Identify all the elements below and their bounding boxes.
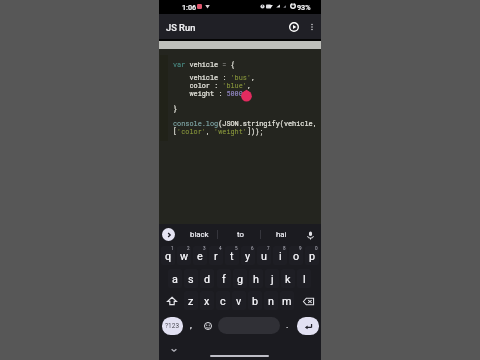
button[interactable]: c (216, 291, 230, 310)
button[interactable]: a (168, 269, 182, 288)
staticText: l (303, 273, 306, 286)
staticText: t (230, 250, 234, 263)
staticText: color : 'blue', (173, 81, 252, 90)
button[interactable]: Run (283, 16, 305, 38)
staticText: 3 (203, 246, 206, 251)
button[interactable]: ?123 (162, 317, 183, 335)
staticText: e (197, 250, 203, 263)
button[interactable]: Emoji (201, 317, 214, 335)
button[interactable]: Space (218, 317, 280, 334)
staticText: var vehicle = { (173, 60, 235, 69)
button[interactable]: 9 (289, 246, 303, 265)
staticText: ?123 (165, 322, 180, 330)
button[interactable]: f (217, 269, 231, 288)
staticText: v (236, 295, 242, 308)
staticText: 4 (219, 246, 222, 251)
staticText: n (268, 295, 274, 308)
staticText: y (245, 250, 251, 263)
button[interactable]: g (233, 269, 247, 288)
staticText: r (214, 250, 218, 263)
button[interactable]: , (185, 317, 197, 335)
button[interactable]: to (220, 224, 260, 245)
button[interactable]: . (282, 317, 293, 335)
button[interactable]: d (200, 269, 214, 288)
staticText: k (285, 273, 291, 286)
staticText: m (282, 295, 292, 308)
button[interactable]: More options (302, 17, 322, 37)
button[interactable]: 1 (161, 246, 175, 265)
staticText: 0 (315, 246, 318, 251)
staticText: o (293, 250, 300, 263)
staticText: c (220, 295, 226, 308)
button[interactable]: s (184, 269, 198, 288)
button[interactable]: 3 (193, 246, 207, 265)
staticText: 7 (267, 246, 270, 251)
staticText: s (188, 273, 194, 286)
button[interactable]: b (248, 291, 262, 310)
staticText: i (279, 250, 282, 263)
button[interactable]: Expand toolbar (162, 228, 175, 241)
button[interactable]: 4 (209, 246, 223, 265)
staticText: b (252, 295, 259, 308)
staticText: , (190, 320, 192, 331)
button[interactable]: j (265, 269, 279, 288)
staticText: weight : 5000 (173, 89, 243, 98)
staticText: a (172, 273, 178, 286)
staticText: d (204, 273, 211, 286)
staticText: ['color', 'weight'])); (173, 127, 264, 136)
staticText: hai (276, 230, 287, 239)
staticText: f (222, 273, 226, 286)
button[interactable]: 6 (241, 246, 255, 265)
button[interactable]: Voice input (303, 228, 317, 242)
staticText: vehicle : 'bus', (173, 73, 256, 82)
button[interactable]: 0 (305, 246, 319, 265)
staticText: q (165, 250, 172, 263)
button[interactable]: v (232, 291, 246, 310)
button[interactable]: Shift (163, 292, 181, 310)
staticText: 1:06 (182, 3, 197, 11)
button[interactable]: 5 (225, 246, 239, 265)
staticText: u (261, 250, 267, 263)
button[interactable]: 8 (273, 246, 287, 265)
button[interactable]: Hide keyboard (167, 343, 181, 357)
staticText: . (286, 320, 289, 331)
staticText: j (271, 273, 274, 286)
button[interactable]: JS Run (166, 22, 196, 33)
button[interactable]: k (281, 269, 295, 288)
button[interactable]: l (297, 269, 311, 288)
staticText: p (309, 250, 316, 263)
button[interactable]: h (249, 269, 263, 288)
button[interactable]: x (200, 291, 214, 310)
button[interactable]: 2 (177, 246, 191, 265)
staticText: 6 (251, 246, 254, 251)
staticText: 2 (187, 246, 190, 251)
staticText: 5 (235, 246, 238, 251)
staticText: z (188, 295, 194, 308)
button[interactable]: Backspace (299, 292, 317, 310)
staticText: g (237, 273, 244, 286)
button[interactable]: Enter (297, 317, 319, 335)
button[interactable]: m (280, 291, 294, 310)
button[interactable]: black (179, 224, 219, 245)
staticText: 1 (171, 246, 174, 251)
button[interactable]: 7 (257, 246, 271, 265)
staticText: 93% (297, 3, 311, 11)
staticText: black (190, 230, 209, 239)
staticText: to (237, 230, 244, 239)
staticText: x (204, 295, 210, 308)
staticText: w (180, 250, 189, 263)
staticText: } (173, 104, 178, 113)
staticText: h (253, 273, 259, 286)
button[interactable]: z (184, 291, 198, 310)
button[interactable]: n (264, 291, 278, 310)
staticText: console.log(JSON.stringify(vehicle, (173, 119, 317, 128)
staticText: 9 (299, 246, 302, 251)
staticText: 8 (283, 246, 286, 251)
button[interactable]: hai (261, 224, 301, 245)
